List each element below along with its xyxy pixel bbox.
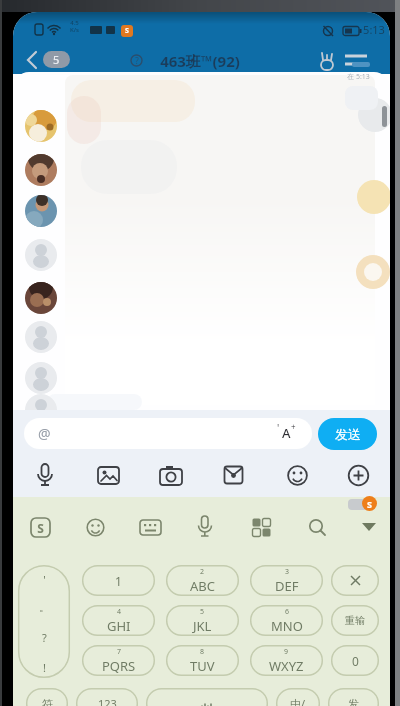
staticText: 0 <box>352 653 359 669</box>
button[interactable] <box>252 518 271 537</box>
staticText: 4.5 <box>70 19 79 27</box>
button[interactable] <box>287 465 308 486</box>
staticText: 发 <box>348 697 359 706</box>
button[interactable]: 重输 <box>331 605 379 636</box>
staticText: S <box>37 520 44 536</box>
staticText: + <box>291 421 296 432</box>
button[interactable] <box>35 464 55 488</box>
staticText: 5 <box>200 607 205 617</box>
staticText: 4 <box>117 607 122 617</box>
staticText: WXYZ <box>269 657 304 675</box>
button[interactable]: 4 <box>82 605 155 636</box>
staticText: S <box>125 26 129 36</box>
button[interactable] <box>224 465 244 486</box>
button[interactable] <box>331 565 379 596</box>
button[interactable] <box>196 516 214 539</box>
staticText: TUV <box>190 657 215 675</box>
button[interactable]: 发 <box>328 688 379 706</box>
staticText: K/s <box>70 26 79 34</box>
button[interactable]: 123 <box>76 688 138 706</box>
button[interactable]: 5 <box>43 51 70 68</box>
staticText: 6 <box>285 607 290 617</box>
staticText: 8 <box>200 647 205 657</box>
button[interactable] <box>86 518 105 537</box>
staticText: 5 <box>53 52 60 67</box>
staticText: PQRS <box>102 657 136 675</box>
staticText: 。 <box>39 600 50 614</box>
staticText: DEF <box>275 577 299 595</box>
staticText: @ <box>38 424 51 443</box>
staticText: S <box>367 498 372 510</box>
button[interactable]: 符 <box>26 688 68 706</box>
staticText: GHI <box>107 617 131 635</box>
staticText: ? <box>42 630 47 645</box>
button[interactable] <box>308 518 327 537</box>
button[interactable]: 3 <box>250 565 323 596</box>
button[interactable] <box>140 520 161 536</box>
button[interactable]: ' <box>18 565 70 678</box>
button[interactable]: 9 <box>250 645 323 676</box>
button[interactable]: 6 <box>250 605 323 636</box>
staticText: 123 <box>98 696 117 706</box>
staticText: 1 <box>115 573 122 589</box>
button[interactable]: @ <box>24 418 312 449</box>
staticText: 5:13 <box>363 22 385 36</box>
staticText: MNO <box>271 617 303 635</box>
staticText: 中/ <box>290 696 306 706</box>
button[interactable] <box>344 53 368 69</box>
staticText: ABC <box>190 577 215 595</box>
button[interactable] <box>23 50 43 70</box>
staticText: ? <box>135 55 139 66</box>
button[interactable] <box>362 523 377 533</box>
staticText: ' <box>43 572 46 587</box>
staticText: 符 <box>42 697 53 706</box>
staticText: 9 <box>284 647 289 657</box>
staticText: 在 5:13 <box>347 72 370 82</box>
button[interactable] <box>146 688 268 706</box>
button[interactable]: 5 <box>166 605 239 636</box>
button[interactable]: 7 <box>82 645 155 676</box>
button[interactable] <box>348 465 369 486</box>
button[interactable] <box>30 517 51 538</box>
button[interactable] <box>98 466 120 486</box>
button[interactable]: 2 <box>166 565 239 596</box>
staticText: 7 <box>117 647 122 657</box>
staticText: A <box>282 424 291 442</box>
staticText: ' <box>277 421 280 435</box>
staticText: 3 <box>285 567 290 577</box>
button[interactable]: 发送 <box>318 418 377 450</box>
staticText: 2 <box>200 567 205 577</box>
staticText: 463班™(92) <box>160 51 240 71</box>
button[interactable]: 中/ <box>276 688 320 706</box>
button[interactable]: 1 <box>82 565 155 596</box>
button[interactable] <box>316 52 338 71</box>
button[interactable]: 0 <box>331 645 379 676</box>
staticText: 发送 <box>335 426 361 442</box>
staticText: 重输 <box>345 614 365 627</box>
staticText: ! <box>43 660 46 675</box>
staticText: JKL <box>193 617 212 635</box>
button[interactable]: 8 <box>166 645 239 676</box>
button[interactable] <box>160 466 183 486</box>
